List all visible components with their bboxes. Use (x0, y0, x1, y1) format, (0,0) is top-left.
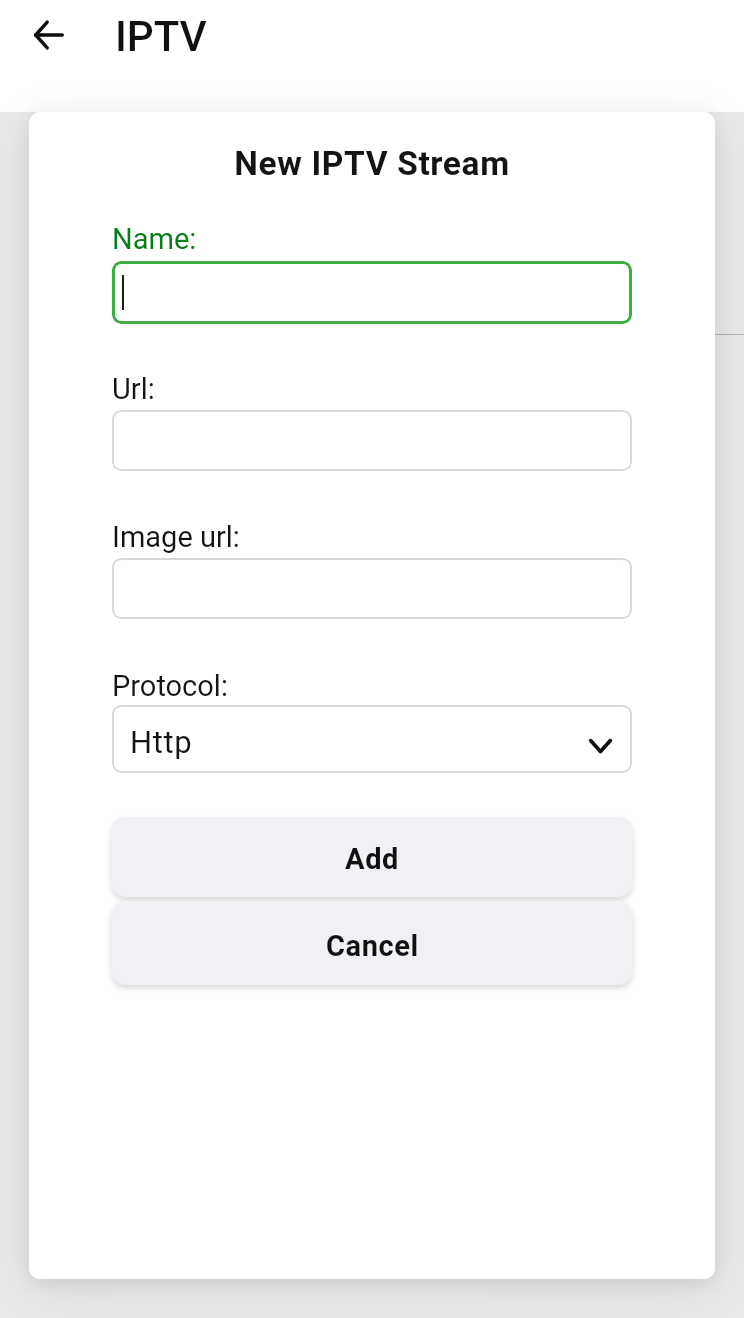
staticText: Add (345, 842, 400, 876)
staticText: Image url: (112, 520, 240, 554)
staticText: Cancel (326, 929, 419, 963)
button[interactable]: Http (112, 705, 632, 773)
staticText: Http (130, 724, 193, 760)
staticText: New IPTV Stream (29, 144, 715, 183)
button[interactable]: Back (17, 3, 81, 67)
staticText: Url: (112, 372, 155, 406)
button[interactable]: Cancel (112, 901, 632, 985)
button[interactable] (112, 558, 632, 619)
staticText: Name: (112, 222, 197, 256)
button[interactable]: Add (112, 817, 632, 897)
staticText: IPTV (115, 12, 207, 61)
button[interactable] (112, 410, 632, 471)
staticText: Protocol: (112, 669, 228, 703)
button[interactable] (112, 261, 632, 324)
